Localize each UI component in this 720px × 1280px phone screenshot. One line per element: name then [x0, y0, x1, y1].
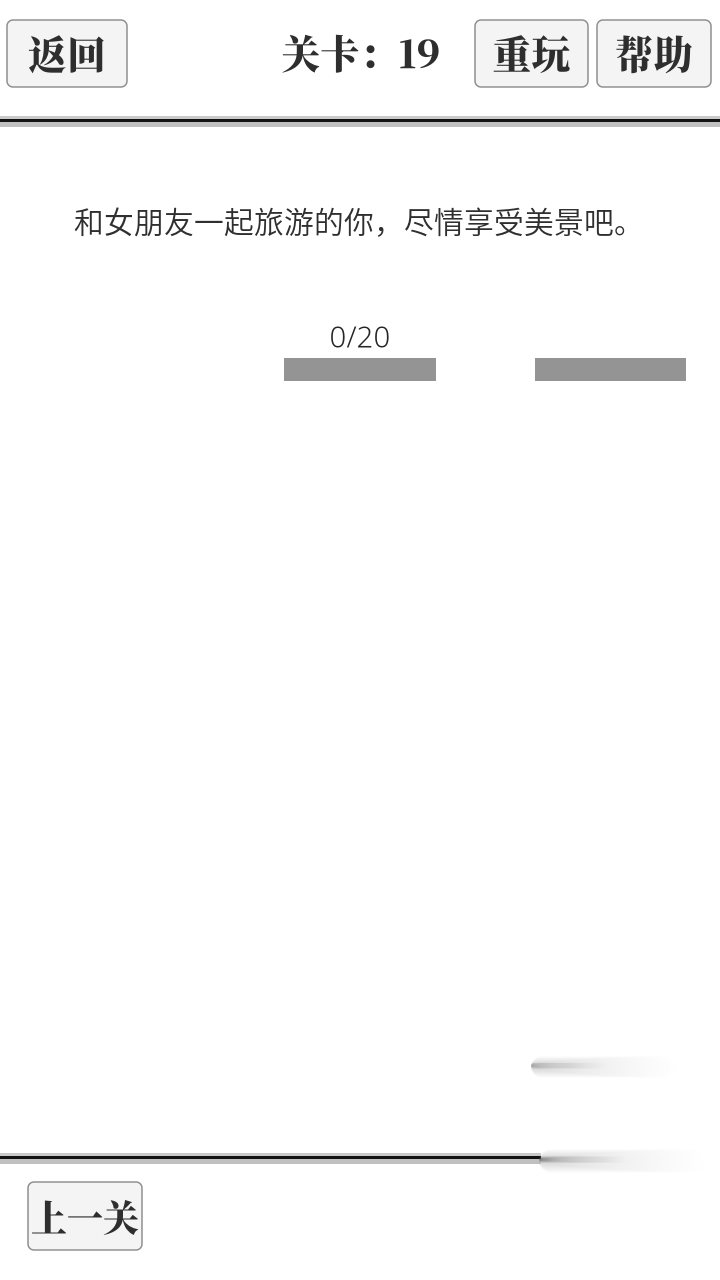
staticText: 关卡：19 — [281, 24, 440, 79]
button[interactable]: 上一关 — [28, 1182, 142, 1250]
staticText: 重玩 — [492, 24, 570, 80]
staticText: 0/20 — [329, 316, 390, 356]
staticText: 帮助 — [615, 24, 693, 80]
staticText: 返回 — [28, 24, 106, 80]
button[interactable]: 重玩 — [475, 20, 588, 87]
button[interactable]: 帮助 — [597, 20, 711, 87]
button[interactable]: 返回 — [7, 20, 127, 87]
staticText: 和女朋友一起旅游的你，尽情享受美景吧。 — [74, 198, 644, 242]
staticText: 上一关 — [31, 1190, 139, 1242]
